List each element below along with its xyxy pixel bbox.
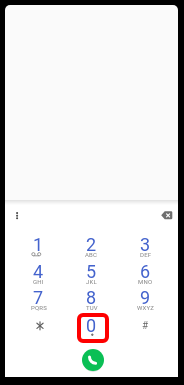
button[interactable]: 0 xyxy=(65,312,118,339)
staticText: 0 xyxy=(86,315,97,336)
staticText: 5 xyxy=(86,261,97,282)
staticText: TUV xyxy=(86,304,98,311)
staticText: # xyxy=(142,320,149,332)
button[interactable]: 6 xyxy=(119,258,172,285)
staticText: 1 xyxy=(33,234,44,255)
staticText: 2 xyxy=(86,234,97,255)
button[interactable] xyxy=(155,205,177,226)
button[interactable]: 5 xyxy=(65,258,118,285)
staticText: 9 xyxy=(140,287,151,308)
staticText: 6 xyxy=(140,261,151,282)
staticText: DEF xyxy=(140,251,152,258)
staticText: GHI xyxy=(33,278,44,285)
button[interactable]: 8 xyxy=(65,284,118,311)
button[interactable] xyxy=(12,312,65,339)
button[interactable]: 1 xyxy=(12,231,65,258)
staticText: JKL xyxy=(86,278,97,285)
button[interactable]: 9 xyxy=(119,284,172,311)
staticText: 8 xyxy=(86,287,97,308)
staticText: WXYZ xyxy=(137,304,155,311)
button[interactable]: 3 xyxy=(119,231,172,258)
button[interactable] xyxy=(82,349,104,371)
button[interactable]: # xyxy=(119,312,172,339)
staticText: 7 xyxy=(33,287,44,308)
staticText: ABC xyxy=(85,251,98,258)
button[interactable] xyxy=(8,205,27,226)
button[interactable]: 7 xyxy=(12,284,65,311)
button[interactable]: 4 xyxy=(12,258,65,285)
staticText: 3 xyxy=(140,234,151,255)
staticText: 4 xyxy=(33,261,44,282)
staticText: MNO xyxy=(138,278,153,285)
button[interactable]: 2 xyxy=(65,231,118,258)
staticText: PQRS xyxy=(31,304,47,311)
